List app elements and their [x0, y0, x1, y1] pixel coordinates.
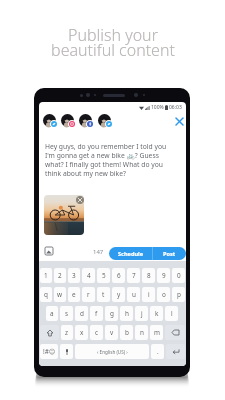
button[interactable]: i: [142, 287, 155, 302]
staticText: h: [125, 309, 129, 318]
staticText: t: [102, 290, 105, 299]
staticText: l: [171, 309, 173, 318]
button[interactable]: Add image: [43, 245, 54, 256]
button[interactable]: 3: [68, 268, 80, 283]
staticText: u: [132, 290, 136, 299]
staticText: x: [80, 328, 84, 337]
staticText: f: [95, 309, 98, 318]
staticText: ‹ English (US) ›: [97, 349, 128, 355]
button[interactable]: Social account: [43, 113, 59, 128]
button[interactable]: d: [75, 306, 88, 321]
staticText: 8: [147, 271, 151, 280]
staticText: i: [148, 290, 150, 299]
staticText: 100%: [151, 104, 164, 111]
button[interactable]: 8: [142, 268, 155, 283]
staticText: .: [157, 347, 159, 356]
button[interactable]: 4: [82, 268, 95, 283]
staticText: a: [50, 309, 54, 318]
staticText: q: [44, 290, 48, 299]
button[interactable]: Social account: [98, 113, 114, 128]
staticText: 9: [162, 271, 166, 280]
staticText: b: [125, 328, 129, 337]
button[interactable]: s: [60, 306, 73, 321]
button[interactable]: Social account: [61, 113, 77, 128]
button[interactable]: [40, 325, 59, 340]
button[interactable]: t: [97, 287, 110, 302]
staticText: k: [155, 309, 159, 318]
button[interactable]: Attached photo: [44, 195, 84, 235]
staticText: !#☺: [43, 347, 56, 356]
button[interactable]: f: [90, 306, 103, 321]
staticText: z: [65, 328, 69, 337]
staticText: 2: [58, 271, 62, 280]
staticText: n: [140, 328, 144, 337]
staticText: 7: [132, 271, 136, 280]
button[interactable]: b: [120, 325, 133, 340]
staticText: 147: [93, 248, 104, 256]
staticText: 4: [87, 271, 91, 280]
button[interactable]: q: [40, 287, 52, 302]
button[interactable]: Close: [173, 115, 185, 127]
button[interactable]: w: [54, 287, 66, 302]
button[interactable]: Social account: [79, 113, 95, 128]
button[interactable]: r: [82, 287, 95, 302]
button[interactable]: p: [172, 287, 185, 302]
staticText: Schedule: [118, 250, 144, 258]
staticText: m: [154, 328, 160, 337]
button[interactable]: 2: [54, 268, 66, 283]
staticText: Hey guys, do you remember I told you I'm…: [45, 142, 167, 178]
button[interactable]: Remove photo: [76, 196, 84, 204]
button[interactable]: k: [150, 306, 163, 321]
staticText: o: [162, 290, 166, 299]
button[interactable]: e: [68, 287, 80, 302]
button[interactable]: Schedule: [109, 247, 152, 260]
button[interactable]: [60, 344, 73, 359]
button[interactable]: 0: [172, 268, 185, 283]
button[interactable]: y: [112, 287, 125, 302]
button[interactable]: z: [61, 325, 73, 340]
button[interactable]: v: [105, 325, 118, 340]
button[interactable]: l: [165, 306, 178, 321]
button[interactable]: [166, 344, 185, 359]
button[interactable]: 7: [127, 268, 140, 283]
staticText: g: [110, 309, 114, 318]
button[interactable]: .: [151, 344, 164, 359]
button[interactable]: 6: [112, 268, 125, 283]
button[interactable]: 1: [40, 268, 52, 283]
staticText: Publish your beautiful content: [51, 24, 175, 60]
staticText: Post: [163, 250, 176, 258]
button[interactable]: Post: [153, 247, 186, 260]
button[interactable]: g: [105, 306, 118, 321]
staticText: r: [87, 290, 90, 299]
staticText: 06:03: [169, 104, 182, 111]
staticText: w: [57, 290, 63, 299]
button[interactable]: a: [46, 306, 58, 321]
button[interactable]: 5: [97, 268, 110, 283]
button[interactable]: m: [150, 325, 163, 340]
staticText: p: [177, 290, 181, 299]
button[interactable]: c: [90, 325, 103, 340]
staticText: s: [65, 309, 69, 318]
button[interactable]: n: [135, 325, 148, 340]
button[interactable]: ‹ English (US) ›: [75, 344, 149, 359]
button[interactable]: o: [157, 287, 170, 302]
button[interactable]: u: [127, 287, 140, 302]
staticText: j: [141, 309, 143, 318]
staticText: 0: [177, 271, 181, 280]
staticText: 5: [102, 271, 106, 280]
staticText: e: [72, 290, 76, 299]
staticText: y: [117, 290, 121, 299]
staticText: d: [80, 309, 84, 318]
staticText: c: [95, 328, 99, 337]
button[interactable]: h: [120, 306, 133, 321]
button[interactable]: x: [75, 325, 88, 340]
staticText: 3: [72, 271, 76, 280]
staticText: 6: [117, 271, 121, 280]
button[interactable]: j: [135, 306, 148, 321]
button[interactable]: !#☺: [40, 344, 58, 359]
staticText: v: [110, 328, 114, 337]
button[interactable]: [165, 325, 185, 340]
staticText: 1: [44, 271, 48, 280]
button[interactable]: 9: [157, 268, 170, 283]
